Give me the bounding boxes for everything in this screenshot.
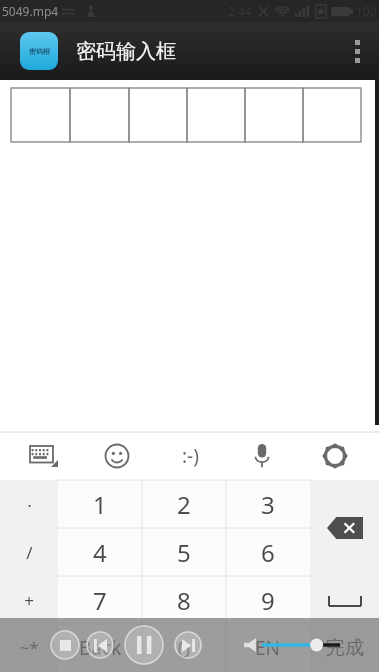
button[interactable]: 4 — [58, 528, 142, 576]
button[interactable]: 3 — [226, 480, 310, 528]
staticText: 完成 — [326, 636, 364, 660]
button[interactable]: 9 — [226, 576, 310, 624]
staticText: + — [24, 589, 34, 612]
button[interactable]: + — [0, 577, 58, 623]
staticText: 9 — [261, 584, 275, 617]
button[interactable]: Pause — [124, 625, 164, 665]
button[interactable]: 0 — [142, 624, 226, 672]
button[interactable]: 5 — [142, 528, 226, 576]
button[interactable]: Emoji — [95, 434, 139, 478]
button[interactable]: Emoticons — [168, 434, 212, 478]
button[interactable]: 8 — [142, 576, 226, 624]
staticText: / — [26, 541, 33, 564]
staticText: 100 — [356, 3, 377, 19]
staticText: 4 — [93, 536, 107, 569]
staticText: 5 — [177, 536, 191, 569]
button[interactable]: · — [0, 482, 58, 528]
button[interactable]: EN — [226, 624, 310, 672]
button[interactable]: 完成 — [310, 624, 379, 672]
button[interactable]: Space — [310, 576, 379, 624]
staticText: 3 — [261, 488, 275, 521]
button[interactable]: ~* — [0, 624, 58, 670]
button[interactable]: Back — [58, 624, 142, 672]
button[interactable]: Keyboard — [22, 434, 66, 478]
button[interactable]: Settings — [313, 434, 357, 478]
staticText: 8 — [177, 584, 191, 617]
button[interactable]: More options — [335, 22, 379, 80]
staticText: 7 — [93, 584, 107, 617]
staticText: EN — [255, 635, 281, 661]
staticText: 密码框 — [29, 47, 50, 56]
button[interactable] — [11, 88, 361, 142]
staticText: 1 — [93, 488, 107, 521]
staticText: 2:44 — [228, 3, 252, 19]
button[interactable]: Next — [174, 631, 202, 659]
button[interactable]: Voice input — [240, 434, 284, 478]
staticText: 0 — [177, 632, 191, 665]
button[interactable]: Backspace — [310, 480, 379, 576]
button[interactable]: Volume slider — [262, 635, 340, 655]
button[interactable]: / — [0, 529, 58, 575]
button[interactable]: 1 — [58, 480, 142, 528]
staticText: ~* — [19, 636, 39, 659]
staticText: Back — [79, 635, 122, 661]
staticText: 6 — [261, 536, 275, 569]
staticText: :-) — [182, 443, 199, 469]
button[interactable]: 6 — [226, 528, 310, 576]
other: Volume — [244, 638, 258, 652]
button[interactable]: 2 — [142, 480, 226, 528]
button[interactable]: Stop — [50, 630, 80, 660]
staticText: 密码输入框 — [76, 39, 176, 64]
button[interactable]: Previous — [86, 631, 114, 659]
staticText: 2 — [177, 488, 191, 521]
staticText: 5049.mp4 — [2, 3, 59, 19]
button[interactable]: 7 — [58, 576, 142, 624]
staticText: · — [27, 494, 32, 517]
